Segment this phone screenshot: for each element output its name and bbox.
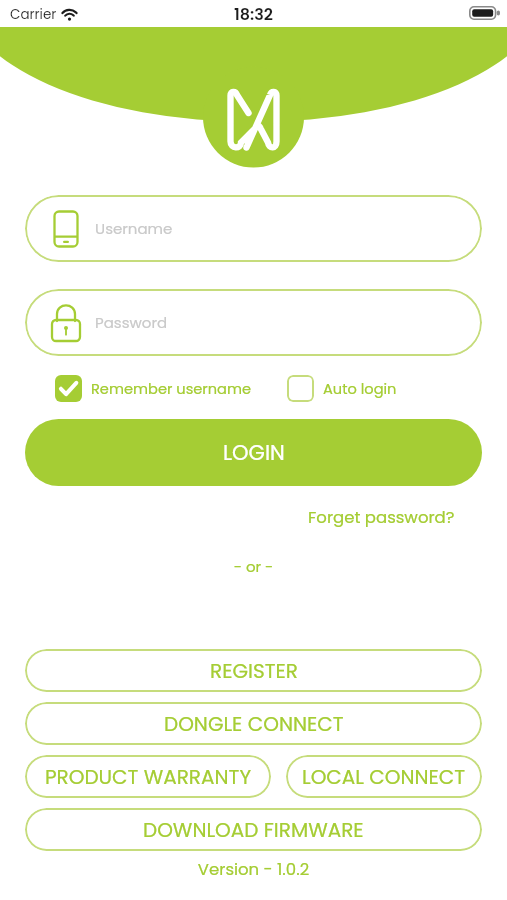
- staticText: Version - 1.0.2: [0, 858, 507, 881]
- button[interactable]: DOWNLOAD FIRMWARE: [25, 808, 482, 851]
- button[interactable]: Password: [25, 289, 482, 356]
- staticText: Username: [95, 218, 173, 239]
- staticText: REGISTER: [210, 657, 298, 685]
- button[interactable]: LOGIN: [25, 419, 482, 486]
- button[interactable]: Forget password?: [308, 506, 455, 529]
- staticText: LOCAL CONNECT: [302, 763, 466, 791]
- button[interactable]: LOCAL CONNECT: [286, 755, 482, 798]
- staticText: Password: [95, 312, 168, 333]
- staticText: 18:32: [234, 3, 274, 25]
- other: Wi-Fi: [60, 6, 79, 20]
- button[interactable]: DONGLE CONNECT: [25, 702, 482, 745]
- button[interactable]: Username: [25, 195, 482, 262]
- staticText: Remember username: [91, 379, 252, 399]
- button[interactable]: Remember username: [55, 375, 252, 402]
- staticText: PRODUCT WARRANTY: [45, 763, 252, 791]
- button[interactable]: REGISTER: [25, 649, 482, 692]
- button[interactable]: PRODUCT WARRANTY: [25, 755, 271, 798]
- staticText: LOGIN: [223, 438, 285, 467]
- button[interactable]: Auto login: [287, 375, 397, 402]
- staticText: - or -: [0, 556, 507, 577]
- staticText: Auto login: [323, 379, 397, 399]
- staticText: DOWNLOAD FIRMWARE: [143, 816, 364, 844]
- staticText: Carrier: [10, 5, 57, 24]
- staticText: DONGLE CONNECT: [164, 710, 344, 738]
